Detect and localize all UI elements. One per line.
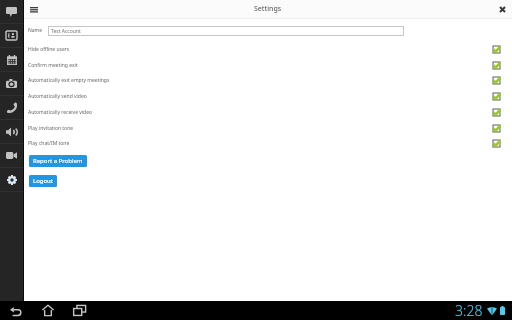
- button[interactable]: Close: [495, 2, 509, 16]
- button[interactable]: Automatically exit empty meetings: [24, 74, 512, 87]
- button[interactable]: Audio: [0, 120, 23, 143]
- button[interactable]: Video: [0, 144, 23, 167]
- staticText: Name: [28, 27, 43, 34]
- button[interactable]: Menu: [27, 2, 41, 16]
- button[interactable]: Automatically receive video: [24, 106, 512, 119]
- staticText: Hide offline users: [28, 46, 70, 53]
- button[interactable]: Back: [5, 301, 26, 320]
- button[interactable]: Chat: [0, 0, 23, 23]
- staticText: Automatically exit empty meetings: [28, 77, 110, 84]
- button[interactable]: Calendar: [0, 48, 23, 71]
- staticText: Play invitation tone: [28, 125, 74, 132]
- staticText: Test Account: [51, 28, 81, 35]
- button[interactable]: Play invitation tone: [24, 122, 512, 135]
- button[interactable]: Logout: [29, 175, 57, 187]
- staticText: Automatically receive video: [28, 109, 93, 116]
- button[interactable]: Phone: [0, 96, 23, 119]
- staticText: 3:28: [455, 301, 483, 320]
- button[interactable]: Recents: [69, 301, 90, 320]
- staticText: Confirm meeting exit: [28, 62, 78, 69]
- button[interactable]: Confirm meeting exit: [24, 59, 512, 72]
- button[interactable]: Report a Problem: [29, 155, 87, 167]
- button[interactable]: Settings: [0, 168, 23, 191]
- staticText: Play chat/IM tone: [28, 140, 70, 147]
- button[interactable]: Hide offline users: [24, 43, 512, 56]
- staticText: Settings: [254, 4, 282, 14]
- button[interactable]: Camera: [0, 72, 23, 95]
- staticText: Automatically send video: [28, 93, 87, 100]
- staticText: Report a Problem: [33, 157, 83, 165]
- button[interactable]: Contacts: [0, 24, 23, 47]
- button[interactable]: Automatically send video: [24, 90, 512, 103]
- button[interactable]: Play chat/IM tone: [24, 137, 512, 150]
- button[interactable]: Home: [37, 301, 58, 320]
- staticText: Logout: [33, 177, 53, 185]
